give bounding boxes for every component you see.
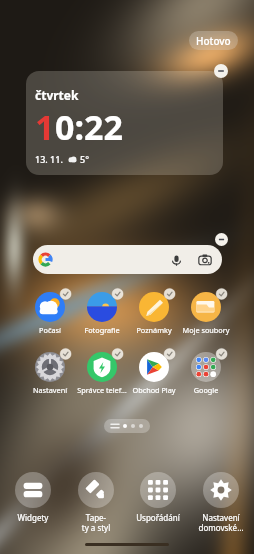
- button[interactable]: Wallpaper and style: [66, 472, 126, 533]
- staticText: Správce telef…: [76, 385, 128, 395]
- button[interactable]: Google Lens: [197, 252, 213, 268]
- button[interactable]: Obchod Play: [128, 349, 180, 395]
- staticText: Nastavení: [24, 385, 76, 395]
- button[interactable]: Fotografie: [76, 289, 128, 335]
- staticText: 1: [35, 104, 55, 150]
- staticText: Fotografie: [76, 325, 128, 335]
- staticText: 5°: [80, 153, 89, 165]
- button[interactable]: Page indicator: [104, 419, 150, 433]
- button[interactable]: Hotovo: [189, 31, 238, 50]
- button[interactable]: Voice search: [168, 252, 184, 268]
- staticText: Tape- ty a styl: [66, 512, 126, 533]
- staticText: 13. 11.: [35, 153, 63, 165]
- button[interactable]: Správce telef…: [76, 349, 128, 395]
- button[interactable]: Home settings: [191, 472, 251, 533]
- staticText: Nastavení domovské…: [191, 512, 251, 533]
- button[interactable]: čtvrtek: [26, 71, 223, 175]
- staticText: Obchod Play: [128, 385, 180, 395]
- staticText: Widgety: [3, 512, 63, 523]
- button[interactable]: Nastavení: [24, 349, 76, 395]
- button[interactable]: Remove search bar: [215, 233, 228, 246]
- staticText: Počasí: [24, 325, 76, 335]
- button[interactable]: Počasí: [24, 289, 76, 335]
- staticText: Google: [180, 385, 232, 395]
- button[interactable]: Poznámky: [128, 289, 180, 335]
- button[interactable]: Widgets: [3, 472, 63, 523]
- staticText: Poznámky: [128, 325, 180, 335]
- button[interactable]: Moje soubory: [180, 289, 232, 335]
- button[interactable]: Google: [180, 349, 232, 395]
- staticText: Uspořádání: [128, 512, 188, 523]
- staticText: Moje soubory: [180, 325, 232, 335]
- button[interactable]: Voice search: [33, 245, 222, 274]
- staticText: Hotovo: [196, 34, 231, 48]
- button[interactable]: Layout: [128, 472, 188, 523]
- staticText: 0:22: [55, 104, 123, 150]
- staticText: čtvrtek: [35, 87, 79, 103]
- button[interactable]: Remove clock widget: [214, 64, 228, 78]
